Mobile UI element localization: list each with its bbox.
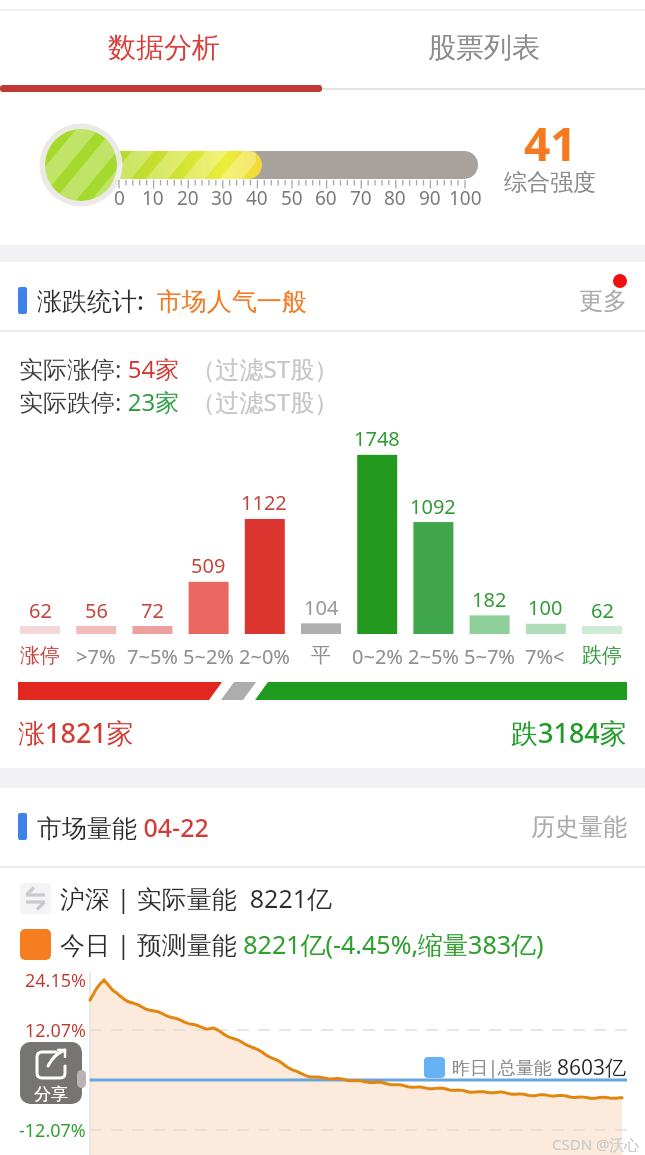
staticText: 跌3184家 — [511, 714, 627, 751]
staticText: 数据分析 — [108, 30, 220, 65]
staticText: 更多 — [579, 286, 627, 316]
staticText: 100 — [528, 594, 563, 621]
staticText: 56 — [85, 597, 108, 624]
staticText: 昨日|总量能 — [452, 1055, 552, 1080]
staticText: 30 — [211, 185, 233, 211]
staticText: 综合强度 — [504, 168, 596, 197]
staticText: 60 — [315, 185, 337, 211]
staticText: 50 — [281, 185, 303, 211]
button[interactable]: 历史量能 — [500, 812, 627, 842]
staticText: CSDN @沃心 — [552, 1134, 640, 1154]
staticText: 10 — [142, 185, 164, 211]
staticText: 平 — [311, 643, 331, 668]
staticText: 实际跌停: 23家 （过滤ST股） — [19, 385, 339, 418]
staticText: 1092 — [410, 493, 456, 520]
staticText: 12.07% — [25, 1018, 86, 1043]
staticText: 7%< — [525, 643, 565, 670]
staticText: 104 — [304, 594, 339, 621]
staticText: 8603亿 — [557, 1053, 627, 1082]
staticText: 90 — [419, 185, 441, 211]
staticText: 41 — [524, 112, 577, 175]
staticText: 24.15% — [25, 968, 86, 993]
staticText: 股票列表 — [428, 30, 540, 65]
staticText: 今日 | 预测量能 8221亿(-4.45%,缩量383亿) — [60, 927, 544, 961]
staticText: 7~5% — [127, 643, 178, 670]
staticText: 72 — [141, 597, 164, 624]
staticText: 跌停 — [582, 643, 622, 668]
staticText: 1122 — [241, 489, 287, 516]
staticText: 0 — [75, 1069, 86, 1094]
staticText: 涨1821家 — [18, 714, 134, 751]
staticText: 509 — [191, 552, 226, 579]
button[interactable]: 分享 — [20, 1042, 82, 1104]
staticText: 5~7% — [464, 643, 515, 670]
staticText: 80 — [384, 185, 406, 211]
staticText: 分享 — [34, 1084, 68, 1104]
staticText: 40 — [246, 185, 268, 211]
button[interactable]: 更多 — [500, 286, 627, 316]
staticText: 62 — [29, 597, 52, 624]
staticText: 1748 — [354, 425, 400, 452]
staticText: 历史量能 — [531, 812, 627, 842]
staticText: 20 — [177, 185, 199, 211]
staticText: 5~2% — [183, 643, 234, 670]
staticText: 2~5% — [408, 643, 459, 670]
staticText: 0 — [114, 185, 125, 211]
staticText: 沪深 | 实际量能 8221亿 — [60, 881, 332, 915]
staticText: 涨停 — [20, 643, 60, 668]
staticText: 市场量能 04-22 — [37, 810, 209, 844]
button[interactable]: 数据分析 — [0, 30, 328, 65]
staticText: -12.07% — [19, 1118, 86, 1143]
staticText: 182 — [472, 586, 507, 613]
staticText: 62 — [591, 597, 614, 624]
staticText: 2~0% — [239, 643, 290, 670]
staticText: 0~2% — [352, 643, 403, 670]
button[interactable]: 股票列表 — [322, 30, 645, 65]
staticText: 涨跌统计: 市场人气一般 — [37, 283, 307, 317]
staticText: 100 — [449, 185, 482, 211]
staticText: 70 — [350, 185, 372, 211]
staticText: >7% — [76, 643, 116, 670]
staticText: 实际涨停: 54家 （过滤ST股） — [19, 352, 339, 385]
